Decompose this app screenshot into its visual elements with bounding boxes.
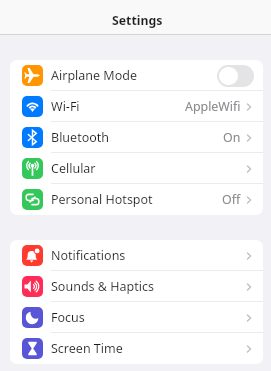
staticText: Focus xyxy=(51,309,85,326)
button[interactable]: Bluetooth xyxy=(10,122,263,153)
staticText: Wi-Fi xyxy=(51,98,80,115)
button[interactable]: Cellular xyxy=(10,153,263,184)
button[interactable]: Focus xyxy=(10,302,263,333)
staticText: Personal Hotspot xyxy=(51,191,153,208)
staticText: AppleWifi xyxy=(185,98,241,115)
staticText: On xyxy=(223,129,241,146)
staticText: Sounds & Haptics xyxy=(51,278,154,295)
button[interactable]: Wi-Fi xyxy=(10,91,263,122)
button[interactable]: Sounds & Haptics xyxy=(10,271,263,302)
staticText: Settings xyxy=(112,12,163,29)
button[interactable]: Personal Hotspot xyxy=(10,184,263,215)
button[interactable]: Screen Time xyxy=(10,333,263,364)
button[interactable]: Airplane Mode xyxy=(10,60,263,91)
staticText: Off xyxy=(222,191,241,208)
staticText: Cellular xyxy=(51,160,96,177)
staticText: Bluetooth xyxy=(51,129,110,146)
staticText: Notifications xyxy=(51,247,126,264)
button[interactable]: Notifications xyxy=(10,240,263,271)
staticText: Airplane Mode xyxy=(51,67,137,84)
staticText: Screen Time xyxy=(51,340,123,357)
